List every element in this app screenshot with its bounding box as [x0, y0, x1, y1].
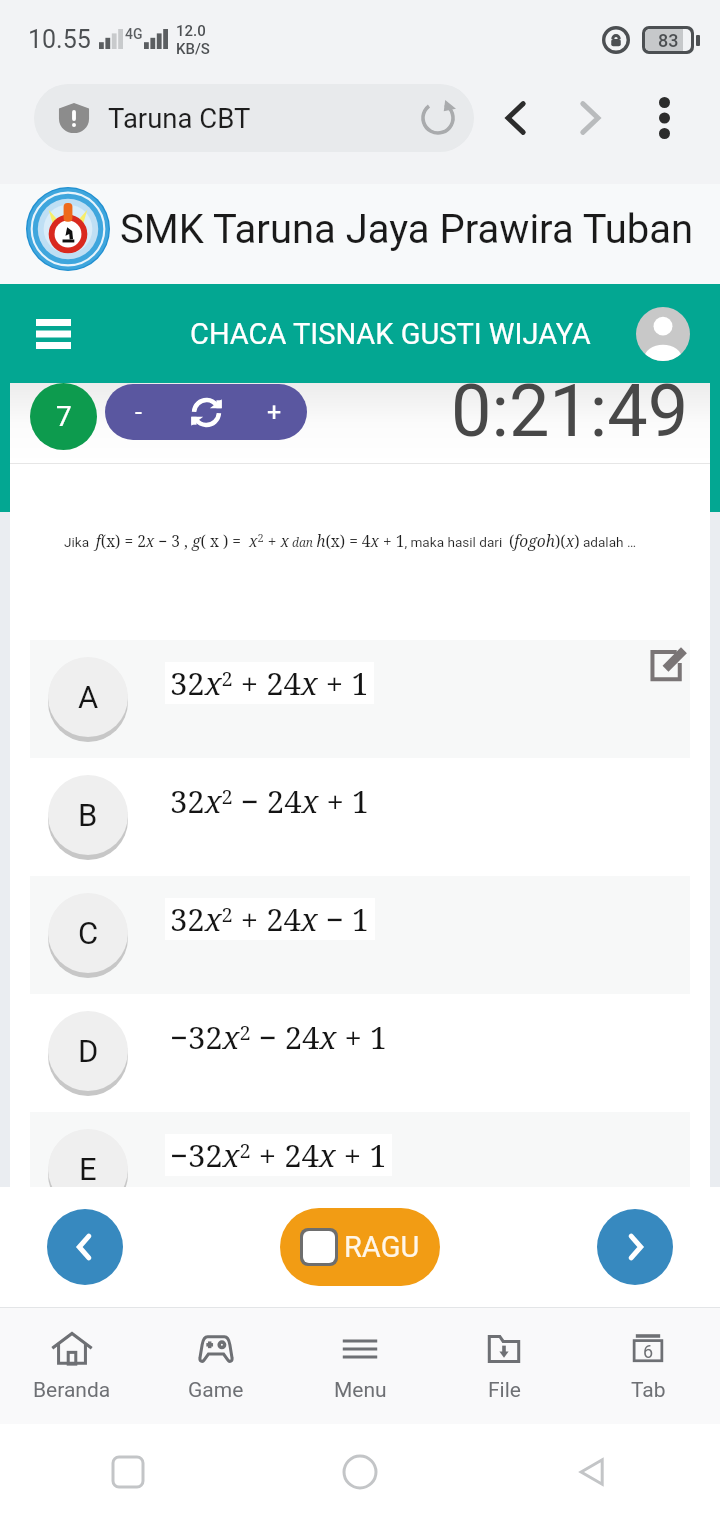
staticText: Tab: [631, 1378, 666, 1403]
staticText: B: [78, 797, 98, 833]
staticText: 7: [56, 400, 72, 433]
button[interactable]: 6: [576, 1307, 720, 1424]
button[interactable]: Back: [486, 88, 546, 148]
button[interactable]: B: [10, 758, 710, 876]
button[interactable]: Menu: [288, 1307, 432, 1424]
button[interactable]: Beranda: [0, 1307, 144, 1424]
staticText: 32x2 + 24x + 1: [170, 662, 369, 704]
button[interactable]: Menu: [20, 301, 86, 367]
staticText: Beranda: [33, 1378, 111, 1403]
staticText: −32x2 + 24x + 1: [170, 1134, 387, 1176]
button[interactable]: Recents: [100, 1444, 156, 1500]
staticText: KB/S: [176, 40, 210, 58]
staticText: SMK Taruna Jaya Prawira Tuban: [120, 206, 694, 253]
staticText: 12.0: [176, 22, 206, 40]
staticText: CHACA TISNAK GUSTI WIJAYA: [190, 317, 591, 351]
button[interactable]: Next question: [597, 1209, 673, 1285]
staticText: 6: [643, 1341, 654, 1362]
button[interactable]: File: [432, 1307, 576, 1424]
staticText: A: [78, 679, 99, 715]
staticText: Game: [188, 1378, 244, 1403]
staticText: Menu: [334, 1378, 387, 1403]
staticText: E: [79, 1151, 97, 1187]
button[interactable]: Profile: [636, 307, 690, 361]
button[interactable]: Home: [332, 1444, 388, 1500]
staticText: −32x2 − 24x + 1: [170, 1016, 388, 1058]
button[interactable]: Reload: [420, 100, 456, 136]
button[interactable]: Refresh: [171, 384, 241, 440]
staticText: D: [78, 1033, 99, 1069]
staticText: 4G: [125, 26, 143, 42]
staticText: 10.55: [28, 25, 91, 54]
staticText: 83: [658, 30, 679, 51]
staticText: Taruna CBT: [108, 102, 251, 134]
button[interactable]: Edit: [644, 641, 692, 689]
staticText: 0:21:49: [451, 383, 689, 450]
staticText: File: [488, 1378, 521, 1403]
button[interactable]: RAGU: [280, 1208, 440, 1286]
staticText: +: [267, 398, 282, 427]
staticText: Jika f(x) = 2x − 3 , g( x ) = x2 + x dan…: [64, 530, 637, 552]
button[interactable]: Taruna CBT: [34, 84, 474, 152]
button[interactable]: Back: [564, 1444, 620, 1500]
staticText: RAGU: [344, 1230, 420, 1264]
button[interactable]: Forward: [560, 88, 620, 148]
button[interactable]: C: [10, 876, 710, 994]
staticText: C: [78, 915, 99, 951]
button[interactable]: Zoom out: [105, 384, 171, 440]
button[interactable]: E: [10, 1112, 710, 1187]
button[interactable]: A: [10, 640, 710, 758]
button[interactable]: D: [10, 994, 710, 1112]
button[interactable]: 7: [30, 383, 97, 450]
button[interactable]: Previous question: [47, 1209, 123, 1285]
staticText: 32x2 − 24x + 1: [170, 780, 370, 822]
button[interactable]: More options: [634, 88, 694, 148]
button[interactable]: Zoom in: [241, 384, 307, 440]
staticText: 32x2 + 24x − 1: [170, 898, 370, 940]
button[interactable]: Game: [144, 1307, 288, 1424]
staticText: -: [135, 398, 142, 427]
